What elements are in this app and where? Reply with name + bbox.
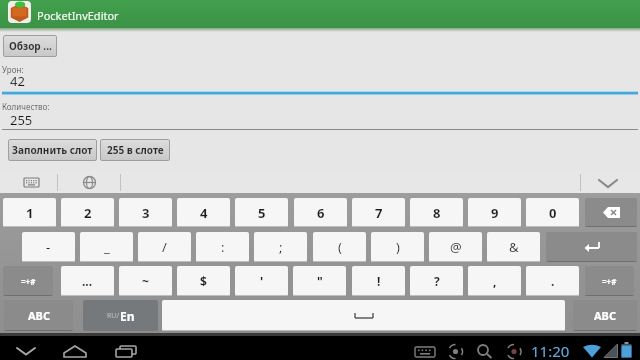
staticText: ABC [594,308,616,323]
staticText: En [120,308,135,324]
button[interactable] [162,300,565,331]
button[interactable]: / [138,232,191,262]
staticText: ... [82,273,93,289]
button[interactable]: 8 [410,198,463,227]
staticText: ) [396,238,400,256]
button[interactable]: 1 [3,198,56,227]
staticText: - [46,238,51,256]
button[interactable]: ~ [119,266,172,296]
staticText: 9 [491,204,499,222]
staticText: RU/ [107,311,120,321]
button[interactable]: : [196,232,249,262]
button[interactable]: 255 в слоте [100,139,170,161]
staticText: 5 [258,204,266,222]
button[interactable]: & [487,232,540,262]
button[interactable]: ABC [573,300,637,331]
staticText: 3 [142,204,150,222]
staticText: / [162,238,167,256]
button[interactable]: 0 [526,198,579,227]
button[interactable]: - [22,232,75,262]
button[interactable]: RU/ [83,300,158,331]
button[interactable] [598,179,618,188]
button[interactable]: ) [371,232,424,262]
button[interactable]: ( [313,232,366,262]
staticText: 8 [433,204,441,222]
staticText: , [493,273,497,289]
staticText: 4 [200,204,208,222]
staticText: 11:20 [531,341,570,360]
button[interactable]: 2 [61,198,114,227]
button[interactable]: ABC [4,300,73,331]
button[interactable]: ... [61,266,114,296]
staticText: =+# [21,276,36,287]
staticText: Обзор ... [9,39,52,53]
button[interactable] [16,347,36,356]
staticText: Количество: [2,101,50,112]
staticText: 1 [26,204,34,222]
button[interactable]: , [468,266,521,296]
staticText: ! [377,273,381,289]
staticText: & [509,238,519,256]
staticText: Заполнить слот [12,143,93,157]
staticText: ABC [28,308,50,323]
staticText: Урон: [2,64,24,75]
button[interactable]: @ [429,232,482,262]
button[interactable]: ! [352,266,405,296]
button[interactable]: Обзор ... [3,35,57,57]
button[interactable]: . [526,266,579,296]
staticText: PocketInvEditor [37,8,119,23]
button[interactable]: ; [254,232,307,262]
staticText: 0 [549,204,557,222]
button[interactable]: Заполнить слот [8,139,97,161]
button[interactable]: ? [410,266,463,296]
staticText: 42 [10,72,25,90]
button[interactable] [546,232,637,262]
staticText: @ [450,238,462,256]
button[interactable]: 5 [235,198,288,227]
staticText: ( [338,238,342,256]
button[interactable] [0,171,640,195]
button[interactable]: 7 [352,198,405,227]
staticText: _ [104,238,110,256]
staticText: ; [279,238,283,256]
button[interactable] [114,346,138,358]
staticText: $ [200,273,207,289]
staticText: 2 [84,204,92,222]
staticText: : [221,238,225,256]
staticText: ? [434,273,440,289]
button[interactable] [585,198,637,227]
staticText: " [317,273,323,289]
staticText: 255 в слоте [107,143,164,157]
staticText: =+# [602,276,617,287]
button[interactable]: 6 [294,198,347,227]
staticText: 7 [375,204,383,222]
button[interactable]: 4 [177,198,230,227]
button[interactable]: 3 [119,198,172,227]
button[interactable]: =+# [3,266,53,296]
staticText: . [551,273,555,289]
staticText: 6 [317,204,325,222]
button[interactable]: 9 [468,198,521,227]
staticText: ' [260,273,264,289]
button[interactable]: _ [80,232,133,262]
staticText: ~ [142,273,149,289]
button[interactable] [62,345,88,358]
button[interactable]: " [293,266,346,296]
button[interactable]: =+# [585,266,634,296]
button[interactable]: $ [177,266,230,296]
button[interactable]: ' [235,266,288,296]
staticText: 255 [10,111,33,129]
